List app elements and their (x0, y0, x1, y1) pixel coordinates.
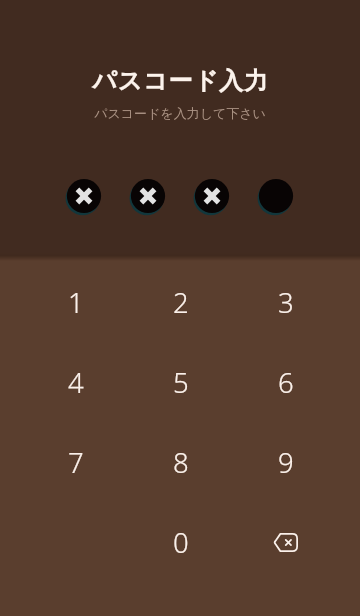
staticText: 6 (278, 364, 294, 401)
button[interactable]: 7 (23, 422, 128, 502)
button[interactable]: 1 (23, 262, 128, 342)
staticText: 0 (173, 524, 189, 561)
button[interactable]: 5 (128, 342, 233, 422)
button[interactable]: 9 (233, 422, 338, 502)
button[interactable]: Delete (233, 502, 338, 582)
button[interactable]: 4 (23, 342, 128, 422)
staticText: 4 (68, 364, 84, 401)
button[interactable]: 3 (233, 262, 338, 342)
button[interactable]: 6 (233, 342, 338, 422)
staticText: 9 (278, 444, 294, 481)
staticText: 5 (173, 364, 189, 401)
staticText: パスコードを入力して下さい (94, 105, 266, 121)
staticText: パスコード入力 (92, 66, 269, 96)
staticText: 2 (173, 284, 189, 321)
button[interactable]: 2 (128, 262, 233, 342)
staticText: 1 (68, 284, 84, 321)
staticText: 7 (68, 444, 84, 481)
staticText: 8 (173, 444, 189, 481)
button[interactable]: 8 (128, 422, 233, 502)
button[interactable]: 0 (128, 502, 233, 582)
staticText: 3 (278, 284, 294, 321)
